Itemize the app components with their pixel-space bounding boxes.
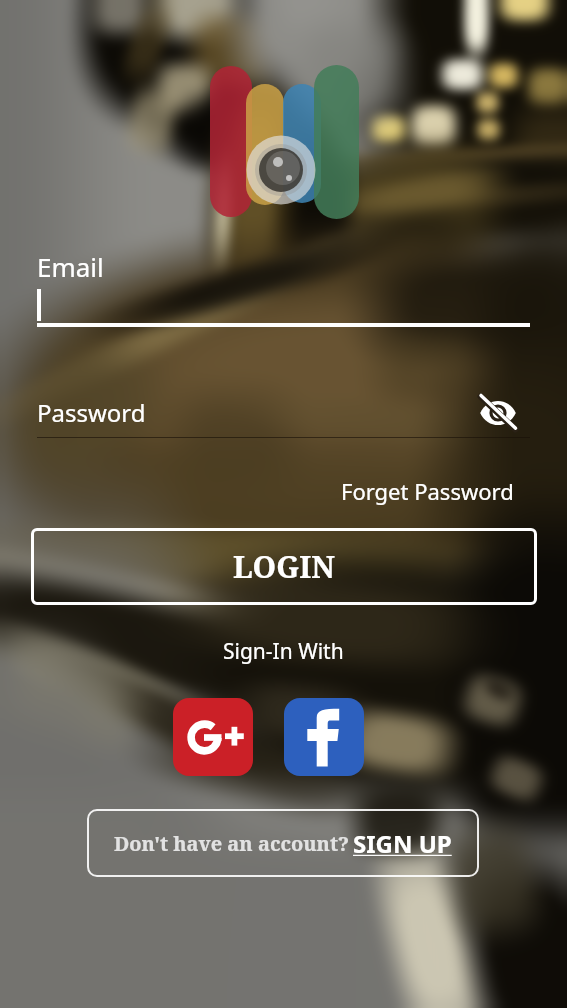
staticText: Don't have an account? — [114, 830, 350, 857]
button[interactable]: Forget Password — [341, 476, 514, 506]
button[interactable]: Sign in with Facebook — [284, 698, 364, 776]
staticText: Email — [37, 249, 104, 284]
staticText: Forget Password — [341, 476, 514, 506]
button[interactable]: LOGIN — [31, 528, 537, 605]
staticText: SIGN UP — [353, 827, 452, 860]
staticText: Password — [37, 396, 146, 429]
staticText: Sign-In With — [223, 637, 344, 666]
button[interactable]: Don't have an account? — [87, 809, 479, 877]
button[interactable]: Sign in with Google — [173, 698, 253, 776]
button[interactable]: Show password — [476, 391, 520, 435]
staticText: LOGIN — [233, 546, 335, 587]
